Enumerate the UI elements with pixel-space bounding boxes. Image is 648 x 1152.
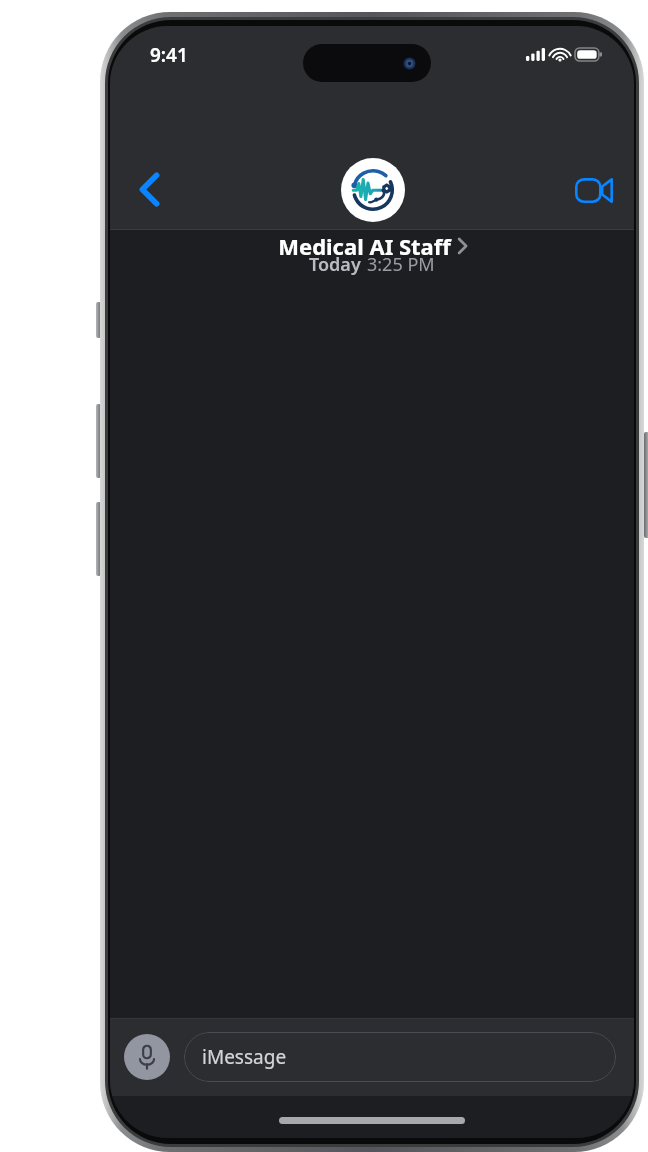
button[interactable]: FaceTime video call: [568, 164, 620, 216]
button[interactable]: iMessage: [184, 1032, 616, 1082]
staticText: Today: [309, 252, 361, 277]
staticText: Medical AI Staff: [278, 231, 451, 261]
staticText: 3:25 PM: [367, 252, 435, 277]
button[interactable]: Medical AI Staff: [278, 158, 467, 261]
button[interactable]: Back: [122, 162, 176, 216]
button[interactable]: Audio message: [124, 1034, 170, 1080]
staticText: iMessage: [202, 1044, 287, 1070]
staticText: 9:41: [150, 42, 188, 68]
